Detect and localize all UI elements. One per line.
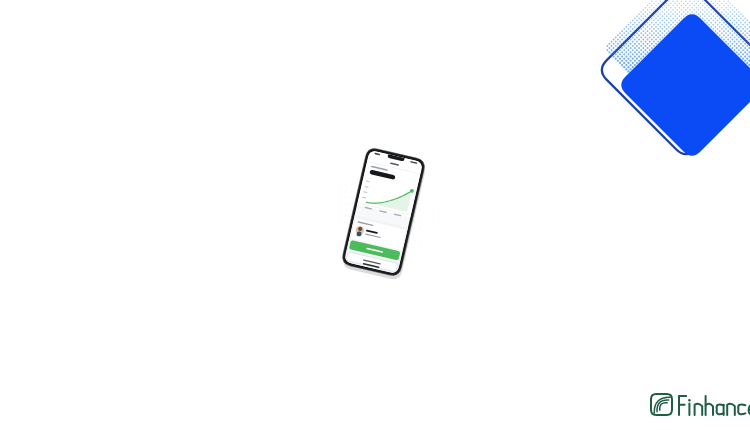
button[interactable]: Finhancer promotional screen (0, 0, 750, 430)
